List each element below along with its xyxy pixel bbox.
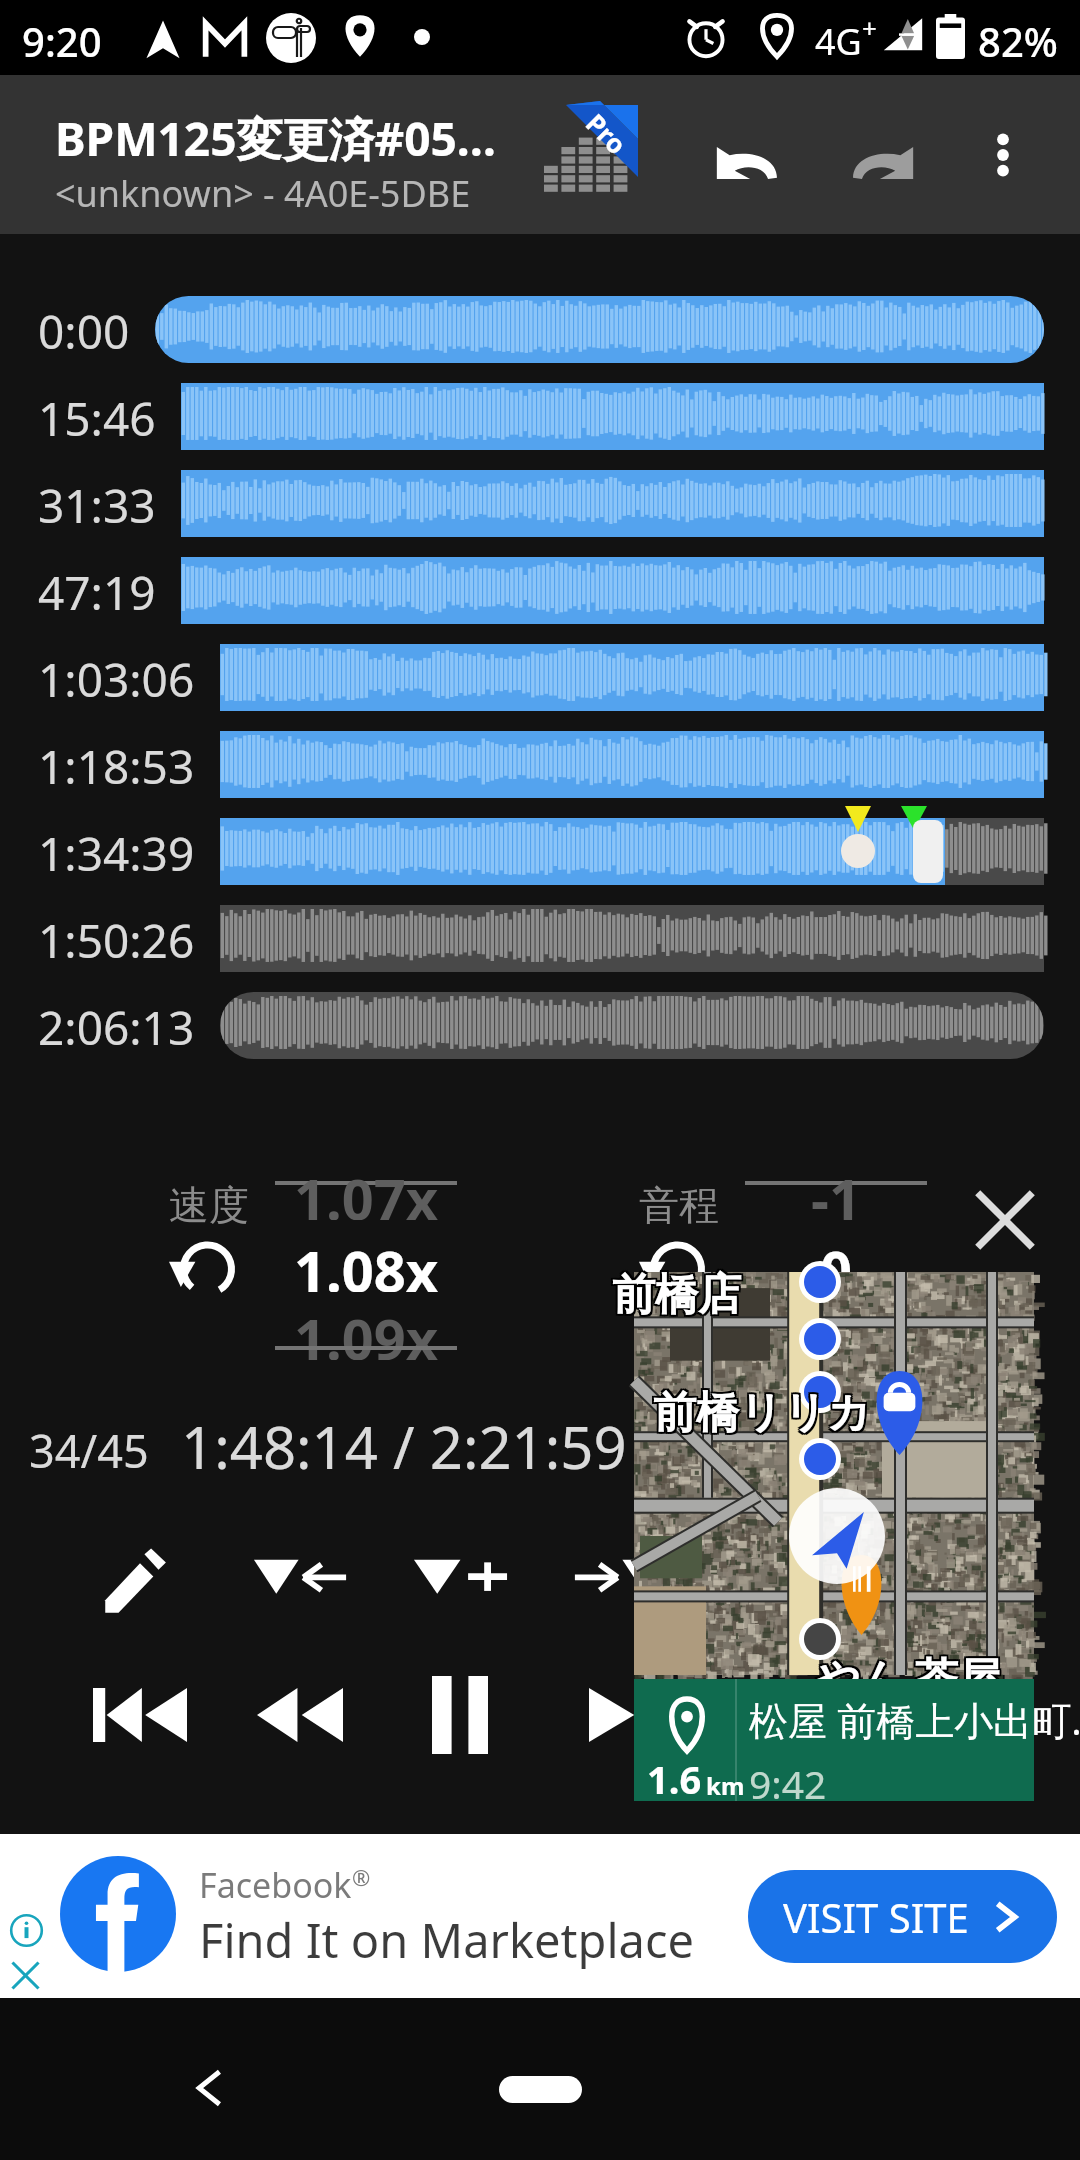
- staticText: やん 茶屋: [816, 1648, 1002, 1707]
- button[interactable]: Close: [955, 1170, 1055, 1270]
- staticText: 2:06:13: [38, 996, 195, 1059]
- staticText: 前橋リリカ: [653, 1388, 872, 1442]
- staticText: 1:03:06: [38, 648, 195, 711]
- button[interactable]: Rewind: [220, 1655, 380, 1775]
- button[interactable]: Skip forward: [540, 1655, 700, 1775]
- staticText: 0:00: [38, 300, 130, 363]
- staticText: 4G: [815, 17, 862, 66]
- staticText: 前橋リリカ: [653, 1384, 872, 1438]
- staticText: Find It on Marketplace: [199, 1908, 694, 1972]
- staticText: 前橋店: [610, 1266, 739, 1320]
- button[interactable]: Home: [499, 2076, 582, 2103]
- button[interactable]: VISIT SITE: [748, 1870, 1057, 1963]
- staticText: やん 茶屋: [818, 1650, 1004, 1709]
- staticText: やん 茶屋: [816, 1650, 1002, 1709]
- staticText: 15:46: [38, 387, 156, 450]
- staticText: km: [706, 1769, 745, 1802]
- staticText: 0: [820, 1232, 853, 1292]
- staticText: 音程: [639, 1180, 719, 1230]
- staticText: 前橋リリカ: [655, 1388, 874, 1442]
- staticText: +: [862, 10, 877, 45]
- button[interactable]: Previous track: [60, 1655, 220, 1775]
- button[interactable]: Reset speed: [275, 1232, 457, 1292]
- staticText: 1.6: [647, 1753, 702, 1805]
- button[interactable]: Reset pitch: [745, 1232, 927, 1292]
- button[interactable]: Marker: [700, 1518, 860, 1638]
- button[interactable]: Undo: [690, 107, 800, 217]
- button[interactable]: Redo: [830, 107, 940, 217]
- button[interactable]: Previous marker: [220, 1518, 380, 1638]
- button[interactable]: More options: [955, 107, 1051, 203]
- staticText: 9:20: [22, 14, 102, 68]
- staticText: 前橋リリカ: [655, 1384, 874, 1438]
- staticText: やん 茶屋: [818, 1648, 1004, 1707]
- staticText: -1: [811, 1160, 861, 1220]
- staticText: 前橋リリカ: [651, 1386, 870, 1440]
- staticText: 前橋リリカ: [655, 1386, 874, 1440]
- staticText: 9:42: [749, 1757, 827, 1810]
- staticText: 1:18:53: [38, 735, 195, 798]
- staticText: 31:33: [38, 474, 156, 537]
- staticText: 1.07x: [294, 1160, 439, 1220]
- staticText: 前橋店: [614, 1268, 743, 1322]
- staticText: 1:34:39: [38, 822, 195, 885]
- button[interactable]: Back: [153, 2033, 263, 2143]
- staticText: 前橋リリカ: [653, 1386, 872, 1440]
- staticText: 34/45: [29, 1420, 149, 1481]
- button[interactable]: Next track: [860, 1655, 1020, 1775]
- staticText: 1.08x: [294, 1232, 439, 1292]
- button[interactable]: Edit: [60, 1518, 220, 1638]
- staticText: 1:50:26: [38, 909, 195, 972]
- staticText: ®: [352, 1862, 371, 1892]
- staticText: 前橋店: [614, 1266, 743, 1320]
- button[interactable]: Pause: [380, 1655, 540, 1775]
- staticText: 前橋店: [612, 1268, 741, 1322]
- staticText: 速度: [169, 1180, 249, 1230]
- staticText: 前橋店: [612, 1266, 741, 1320]
- button[interactable]: Next marker: [540, 1518, 700, 1638]
- button[interactable]: Add marker: [380, 1518, 540, 1638]
- staticText: やん 茶屋: [814, 1646, 1000, 1705]
- staticText: 82%: [978, 14, 1058, 68]
- staticText: 1: [820, 1300, 853, 1360]
- staticText: Pro: [579, 106, 635, 161]
- staticText: 前橋店: [614, 1270, 743, 1324]
- button[interactable]: Navigation map: [634, 1272, 1034, 1802]
- staticText: VISIT SITE: [783, 1890, 969, 1944]
- staticText: 1.09x: [294, 1300, 439, 1360]
- button[interactable]: Reset pitch: [625, 1222, 719, 1316]
- staticText: 1:48:14 / 2:21:59: [181, 1407, 627, 1486]
- staticText: 前橋リリカ: [651, 1384, 870, 1438]
- staticText: 松屋 前橋上小出町…: [749, 1693, 1080, 1746]
- staticText: 前橋リリカ: [651, 1388, 870, 1442]
- staticText: Facebook: [199, 1862, 352, 1908]
- staticText: やん 茶屋: [818, 1646, 1004, 1705]
- button[interactable]: Options: [860, 1518, 1020, 1638]
- staticText: BPM125変更済#05…: [55, 107, 497, 170]
- staticText: 前橋店: [612, 1270, 741, 1324]
- button[interactable]: Fast forward: [700, 1655, 860, 1775]
- staticText: 47:19: [38, 561, 156, 624]
- staticText: やん 茶屋: [814, 1648, 1000, 1707]
- staticText: 前橋店: [610, 1270, 739, 1324]
- staticText: 前橋店: [610, 1268, 739, 1322]
- button[interactable]: Reset speed: [155, 1222, 249, 1316]
- staticText: <unknown> - 4A0E-5DBE: [55, 169, 471, 218]
- staticText: やん 茶屋: [814, 1650, 1000, 1709]
- staticText: やん 茶屋: [816, 1646, 1002, 1705]
